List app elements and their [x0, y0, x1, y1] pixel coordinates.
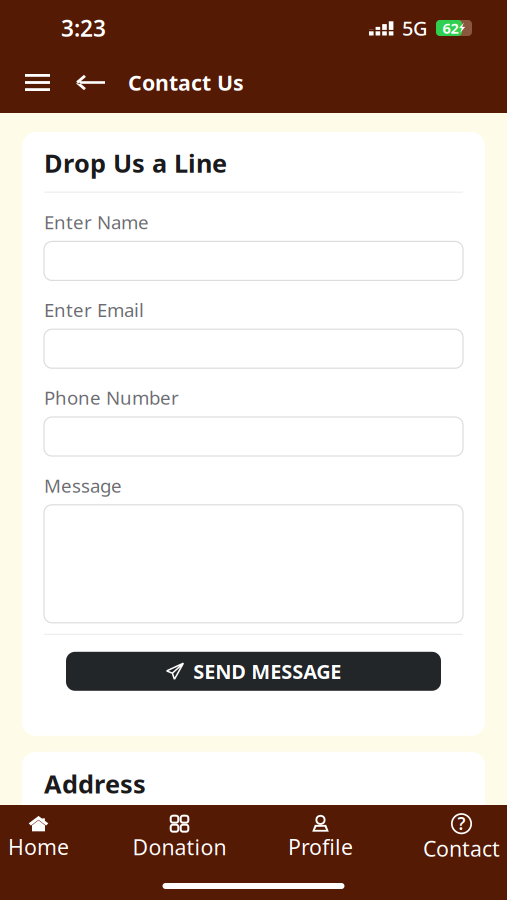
staticText: 3:23: [61, 13, 106, 43]
staticText: Enter Name: [44, 210, 149, 234]
button[interactable]: Home: [0, 807, 109, 861]
staticText: ?: [457, 812, 465, 835]
button[interactable]: Profile: [250, 807, 391, 861]
staticText: Home: [8, 832, 69, 861]
staticText: Drop Us a Line: [44, 146, 227, 180]
staticText: Address: [44, 767, 146, 800]
staticText: SEND MESSAGE: [193, 658, 341, 685]
staticText: Donation: [132, 833, 226, 861]
button[interactable]: SEND MESSAGE: [66, 652, 441, 691]
staticText: Message: [44, 473, 122, 498]
staticText: Phone Number: [44, 385, 179, 410]
staticText: 5G: [402, 15, 428, 41]
staticText: Contact Us: [128, 68, 244, 97]
staticText: Profile: [288, 832, 353, 861]
button[interactable]: ?: [391, 805, 507, 863]
staticText: Enter Email: [44, 297, 144, 322]
button[interactable]: Menu: [21, 66, 54, 103]
button[interactable]: Back: [72, 66, 109, 103]
staticText: Contact: [423, 834, 500, 863]
button[interactable]: Donation: [109, 807, 250, 861]
staticText: 62: [442, 18, 458, 38]
